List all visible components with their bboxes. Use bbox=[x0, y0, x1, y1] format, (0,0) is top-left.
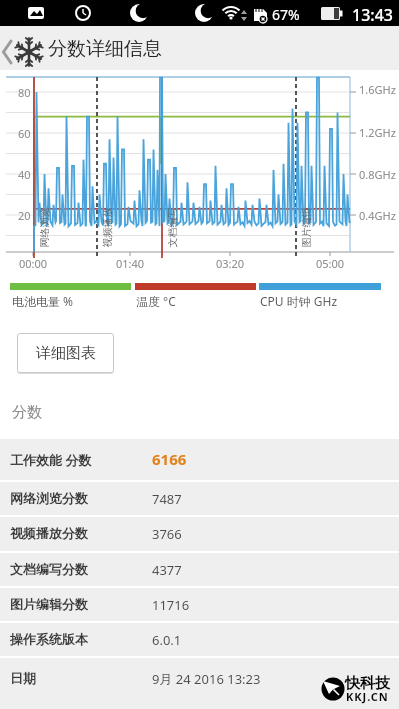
staticText: 20 bbox=[18, 208, 31, 223]
staticText: 03:20 bbox=[216, 256, 245, 271]
staticText: 文档编写分数 bbox=[10, 561, 88, 577]
staticText: 40 bbox=[18, 167, 31, 182]
staticText: 4377 bbox=[152, 561, 182, 579]
staticText: 3766 bbox=[152, 525, 182, 543]
staticText: 0.4GHz bbox=[359, 208, 396, 223]
staticText: 7487 bbox=[152, 490, 182, 508]
staticText: 详细图表 bbox=[36, 344, 96, 363]
staticText: 01:40 bbox=[116, 256, 145, 271]
staticText: 图片编辑分数 bbox=[10, 596, 88, 612]
button[interactable]: 操作系统版本 bbox=[0, 623, 399, 656]
staticText: 6.0.1 bbox=[152, 631, 182, 649]
staticText: 67% bbox=[272, 5, 300, 24]
button[interactable]: 文档编写分数 bbox=[0, 553, 399, 586]
staticText: 视频播放 bbox=[100, 207, 113, 247]
staticText: 日期 bbox=[10, 670, 36, 686]
button[interactable]: 视频播放分数 bbox=[0, 517, 399, 551]
staticText: 0.8GHz bbox=[359, 167, 396, 182]
button[interactable]: 图片编辑分数 bbox=[0, 588, 399, 621]
button[interactable]: 日期 bbox=[0, 658, 399, 709]
staticText: 电池电量 % bbox=[12, 293, 74, 309]
button[interactable]: 详细图表 bbox=[17, 333, 114, 373]
staticText: 操作系统版本 bbox=[10, 631, 88, 647]
staticText: 9月 24 2016 13:23 bbox=[152, 670, 261, 688]
staticText: 网络浏览分数 bbox=[10, 490, 88, 506]
staticText: 快科技 bbox=[345, 674, 390, 693]
staticText: 视频播放分数 bbox=[10, 525, 88, 541]
staticText: 6166 bbox=[152, 449, 187, 469]
staticText: 1.2GHz bbox=[359, 125, 396, 140]
staticText: 分数 bbox=[12, 403, 42, 422]
button[interactable]: 工作效能 分数 bbox=[0, 439, 399, 480]
staticText: 图片编辑 bbox=[299, 207, 312, 247]
staticText: 00:00 bbox=[19, 256, 48, 271]
button[interactable]: 网络浏览分数 bbox=[0, 482, 399, 515]
staticText: 11716 bbox=[152, 596, 190, 614]
staticText: KKJ.CN bbox=[346, 689, 389, 704]
staticText: 80 bbox=[18, 85, 31, 100]
staticText: 13:43 bbox=[352, 4, 393, 26]
staticText: CPU 时钟 GHz bbox=[260, 293, 338, 309]
staticText: 60 bbox=[18, 126, 31, 141]
staticText: 工作效能 分数 bbox=[10, 451, 92, 469]
button[interactable] bbox=[0, 26, 48, 70]
staticText: 网络浏览 bbox=[37, 207, 50, 247]
staticText: 05:00 bbox=[316, 256, 345, 271]
staticText: 1.6GHz bbox=[359, 82, 396, 97]
staticText: 分数详细信息 bbox=[48, 37, 162, 61]
staticText: 文档编写 bbox=[165, 207, 178, 247]
staticText: 温度 °C bbox=[136, 293, 176, 309]
